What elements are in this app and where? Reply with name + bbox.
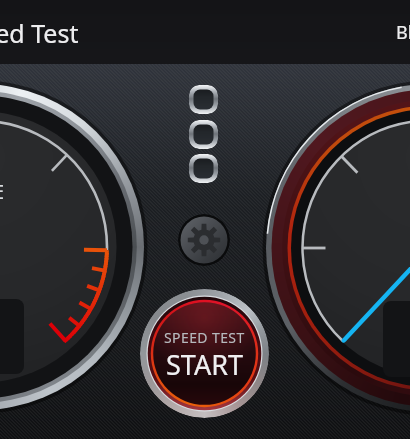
staticText: START <box>166 346 244 383</box>
staticText: E <box>0 178 5 205</box>
staticText: Speed Test <box>0 16 79 50</box>
button[interactable]: SPEED TEST <box>140 289 269 418</box>
button[interactable]: Indicator <box>189 85 218 114</box>
staticText: SPEED TEST <box>164 328 245 347</box>
button[interactable]: Indicator <box>189 154 218 183</box>
button[interactable]: Settings <box>178 214 230 266</box>
button[interactable]: Indicator <box>189 120 218 149</box>
staticText: Blank <box>396 20 410 45</box>
